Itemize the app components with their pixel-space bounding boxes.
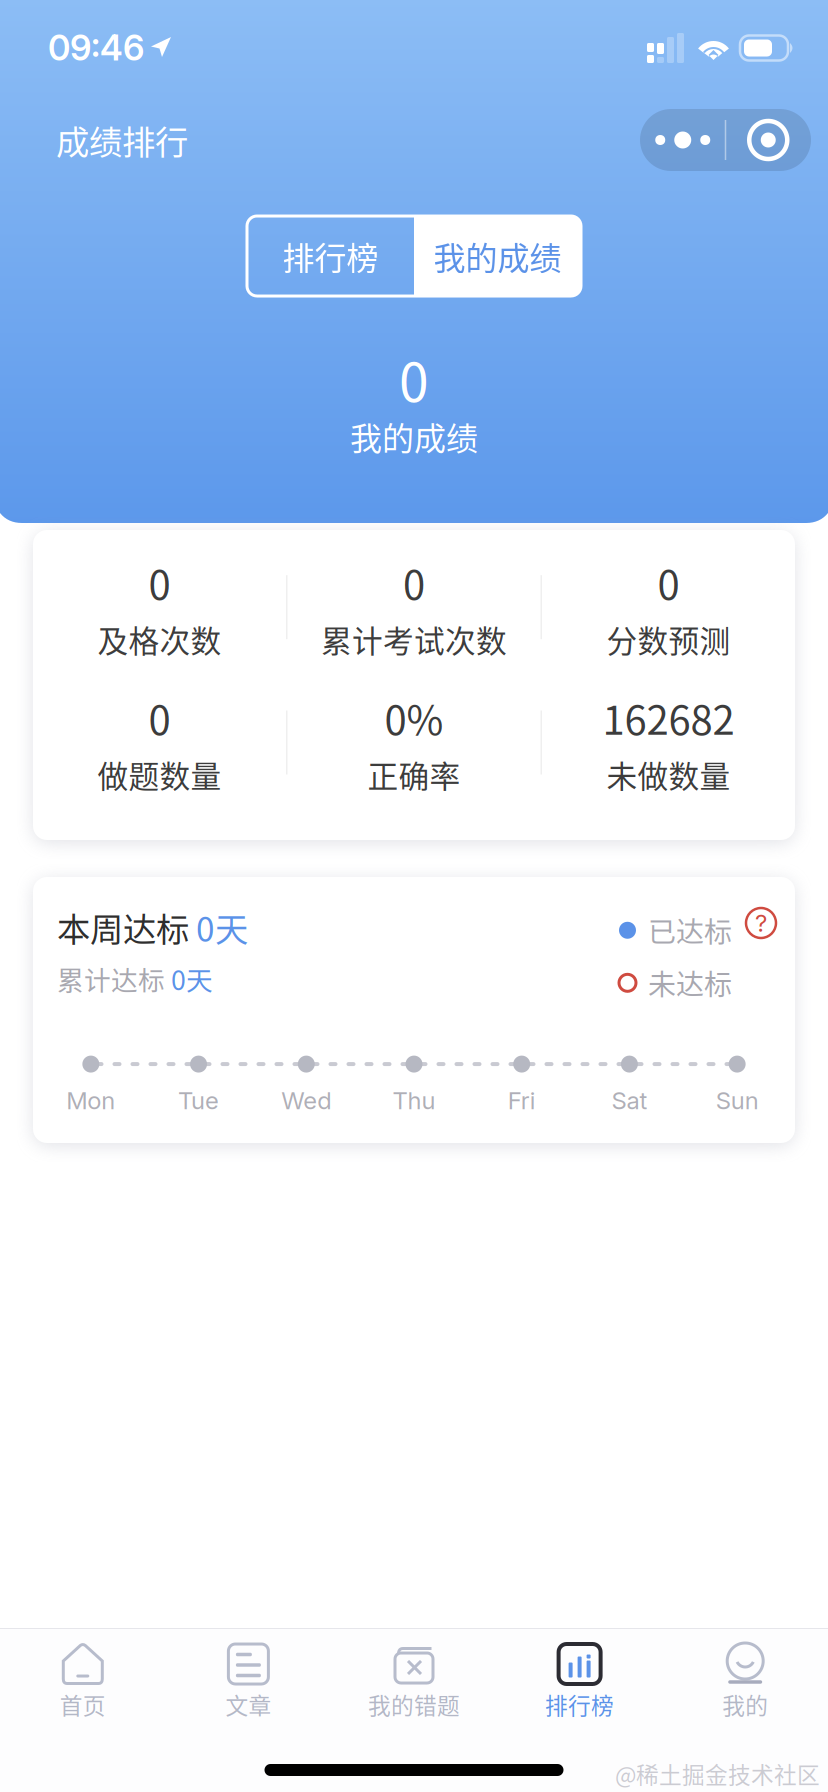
staticText: 排行榜 xyxy=(282,233,378,279)
staticText: 0 xyxy=(148,688,170,746)
staticText: 0 xyxy=(403,553,425,611)
staticText: 0 xyxy=(148,553,170,611)
staticText: 做题数量 xyxy=(97,752,221,797)
staticText: 162682 xyxy=(602,688,734,746)
staticText: 排行榜 xyxy=(545,1688,614,1721)
staticText: Sun xyxy=(716,1086,759,1115)
staticText: Thu xyxy=(392,1086,435,1115)
staticText: 我的错题 xyxy=(368,1688,460,1721)
staticText: 09:46 xyxy=(48,27,144,69)
staticText: Tue xyxy=(178,1086,219,1115)
staticText: @稀土掘金技术社区 xyxy=(615,1757,820,1790)
staticText: 未达标 xyxy=(648,962,732,1003)
staticText: 0 xyxy=(657,553,679,611)
staticText: 已达标 xyxy=(648,910,732,950)
button[interactable]: Help xyxy=(732,903,790,943)
staticText: 文章 xyxy=(225,1688,271,1721)
staticText: 我的成绩 xyxy=(433,233,561,279)
staticText: 我的成绩 xyxy=(350,413,478,459)
staticText: 0天 xyxy=(171,959,213,998)
staticText: Fri xyxy=(508,1086,536,1115)
button[interactable]: 文章 xyxy=(166,1643,331,1735)
staticText: 本周达标 xyxy=(57,903,196,951)
staticText: 0 xyxy=(399,340,429,417)
staticText: 首页 xyxy=(60,1688,106,1721)
staticText: 分数预测 xyxy=(606,617,730,661)
staticText: 正确率 xyxy=(367,752,460,797)
button[interactable]: Close mini program xyxy=(726,109,810,171)
staticText: Mon xyxy=(66,1086,115,1115)
button[interactable]: 排行榜 xyxy=(247,216,414,296)
button[interactable]: More options xyxy=(641,109,725,171)
button[interactable]: 首页 xyxy=(0,1643,166,1735)
staticText: 0% xyxy=(384,688,443,746)
button[interactable]: 我的错题 xyxy=(331,1643,497,1735)
staticText: 累计达标 xyxy=(57,959,171,998)
button[interactable]: 排行榜 xyxy=(497,1643,662,1735)
staticText: ? xyxy=(755,908,767,937)
staticText: 及格次数 xyxy=(97,617,221,661)
staticText: Wed xyxy=(281,1086,331,1115)
staticText: 我的 xyxy=(722,1688,768,1721)
staticText: 成绩排行 xyxy=(56,116,188,164)
staticText: 未做数量 xyxy=(606,752,730,797)
button[interactable]: 我的 xyxy=(662,1643,828,1735)
staticText: Sat xyxy=(611,1086,647,1115)
staticText: 累计考试次数 xyxy=(321,617,507,661)
button[interactable]: 我的成绩 xyxy=(414,216,581,296)
staticText: 0天 xyxy=(196,903,248,951)
